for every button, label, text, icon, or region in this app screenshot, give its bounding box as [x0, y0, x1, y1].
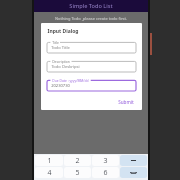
- staticText: 3: [103, 156, 108, 166]
- button[interactable]: 6: [92, 167, 119, 178]
- button[interactable]: 2: [64, 155, 91, 166]
- staticText: 4: [47, 168, 52, 178]
- button[interactable]: Submit: [116, 98, 136, 106]
- staticText: Title: [52, 40, 59, 44]
- staticText: Todo Title: [51, 45, 70, 51]
- staticText: 6: [103, 168, 108, 178]
- button[interactable]: 5: [64, 167, 91, 178]
- button[interactable]: Title: [47, 40, 136, 53]
- staticText: Description: [52, 59, 70, 63]
- button[interactable]: 1: [35, 155, 63, 166]
- button[interactable]: Due Date : yyyy/MM/dd: [47, 78, 136, 91]
- button[interactable]: Backspace: [120, 155, 147, 166]
- staticText: Simple Todo List: [69, 2, 113, 10]
- staticText: Due Date : yyyy/MM/dd: [52, 78, 89, 82]
- staticText: Nothing Todo ,please create todo first.: [55, 16, 127, 21]
- button[interactable]: Enter: [120, 167, 147, 178]
- staticText: 20230730: [51, 83, 70, 89]
- staticText: 1: [47, 156, 52, 166]
- button[interactable]: 3: [92, 155, 119, 166]
- button[interactable]: Description: [47, 59, 136, 72]
- button[interactable]: Simple Todo List: [34, 0, 148, 12]
- staticText: Submit: [118, 99, 134, 105]
- staticText: Input Dialog: [47, 28, 79, 35]
- staticText: 5: [75, 168, 80, 178]
- staticText: 2: [75, 156, 80, 166]
- button[interactable]: 4: [35, 167, 63, 178]
- staticText: Todo Deskripsi: [51, 64, 80, 70]
